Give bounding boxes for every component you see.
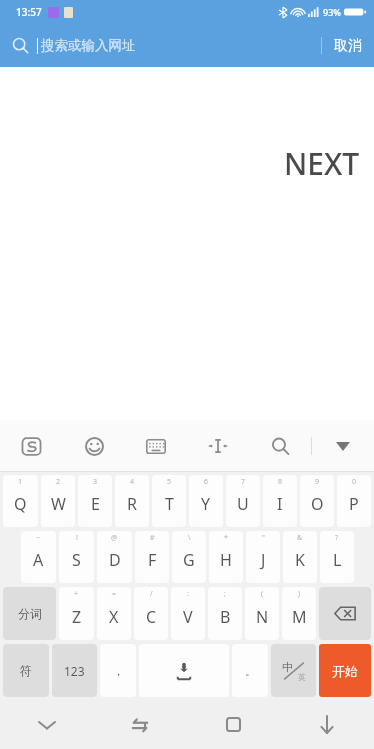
button[interactable]: @ bbox=[97, 531, 132, 583]
staticText: ~ bbox=[36, 533, 41, 543]
button[interactable]: ; bbox=[208, 587, 242, 640]
button[interactable]: Hide keyboard bbox=[0, 700, 93, 749]
staticText: ) bbox=[298, 589, 301, 599]
staticText: 3 bbox=[93, 477, 98, 487]
button[interactable]: 5 bbox=[152, 475, 186, 527]
staticText: B bbox=[220, 606, 231, 628]
button[interactable]: & bbox=[283, 531, 317, 583]
button[interactable]: ， bbox=[100, 644, 136, 697]
staticText: 开始 bbox=[332, 663, 358, 679]
staticText: 5 bbox=[167, 477, 172, 487]
button[interactable]: More bbox=[312, 420, 374, 472]
button[interactable]: / bbox=[134, 587, 168, 640]
button[interactable]: Down bbox=[280, 700, 374, 749]
staticText: ， bbox=[113, 664, 124, 678]
staticText: = bbox=[112, 589, 117, 599]
staticText: ; bbox=[224, 589, 226, 599]
staticText: 9 bbox=[315, 477, 320, 487]
button[interactable]: 1 bbox=[3, 475, 38, 527]
staticText: W bbox=[51, 493, 66, 515]
button[interactable]: ) bbox=[282, 587, 316, 640]
button[interactable]: 6 bbox=[189, 475, 223, 527]
staticText: 搜索或输入网址 bbox=[41, 37, 136, 54]
staticText: NEXT bbox=[284, 143, 360, 184]
staticText: 分词 bbox=[18, 606, 42, 621]
button[interactable]: Sogou input bbox=[0, 420, 63, 472]
staticText: 6 bbox=[204, 477, 209, 487]
button[interactable]: 开始 bbox=[319, 644, 371, 697]
button[interactable]: Switch Chinese English bbox=[271, 644, 316, 697]
staticText: Q bbox=[14, 493, 27, 515]
staticText: Z bbox=[72, 606, 82, 628]
button[interactable]: ~ bbox=[21, 531, 56, 583]
button[interactable]: # bbox=[135, 531, 169, 583]
staticText: @ bbox=[111, 533, 118, 543]
staticText: F bbox=[148, 549, 157, 571]
button[interactable]: ! bbox=[59, 531, 94, 583]
staticText: R bbox=[127, 493, 137, 515]
staticText: P bbox=[349, 493, 359, 515]
button[interactable]: 7 bbox=[226, 475, 260, 527]
staticText: 1 bbox=[18, 477, 23, 487]
button[interactable]: 2 bbox=[41, 475, 75, 527]
staticText: L bbox=[333, 549, 342, 571]
staticText: Y bbox=[201, 493, 211, 515]
staticText: X bbox=[109, 606, 119, 628]
button[interactable]: Emoji bbox=[63, 420, 125, 472]
staticText: V bbox=[183, 606, 193, 628]
staticText: 2 bbox=[56, 477, 61, 487]
staticText: + bbox=[74, 589, 79, 599]
staticText: J bbox=[261, 549, 266, 571]
button[interactable]: 8 bbox=[263, 475, 297, 527]
staticText: O bbox=[311, 493, 324, 515]
button[interactable]: 0 bbox=[337, 475, 371, 527]
staticText: & bbox=[297, 533, 303, 543]
staticText: 123 bbox=[64, 663, 85, 679]
staticText: S bbox=[72, 549, 81, 571]
staticText: I bbox=[277, 493, 283, 515]
staticText: 。 bbox=[245, 664, 256, 678]
staticText: 13:57 bbox=[16, 5, 42, 19]
staticText: N bbox=[256, 606, 269, 628]
staticText: H bbox=[220, 549, 232, 571]
staticText: G bbox=[183, 549, 195, 571]
staticText: 英 bbox=[298, 672, 306, 682]
staticText: 7 bbox=[241, 477, 246, 487]
button[interactable]: \ bbox=[172, 531, 206, 583]
button[interactable]: 9 bbox=[300, 475, 334, 527]
button[interactable]: * bbox=[209, 531, 243, 583]
button[interactable]: = bbox=[97, 587, 131, 640]
button[interactable]: 123 bbox=[52, 644, 97, 697]
staticText: 93% bbox=[323, 6, 341, 18]
button[interactable]: : bbox=[171, 587, 205, 640]
staticText: / bbox=[150, 589, 153, 599]
staticText: M bbox=[292, 606, 307, 628]
staticText: C bbox=[146, 606, 157, 628]
staticText: : bbox=[187, 589, 189, 599]
button[interactable]: 取消 bbox=[322, 24, 374, 67]
button[interactable]: 4 bbox=[115, 475, 149, 527]
staticText: T bbox=[165, 493, 174, 515]
staticText: K bbox=[295, 549, 305, 571]
button[interactable]: ( bbox=[245, 587, 279, 640]
button[interactable]: " bbox=[246, 531, 280, 583]
button[interactable]: 3 bbox=[78, 475, 112, 527]
button[interactable]: + bbox=[59, 587, 94, 640]
staticText: E bbox=[91, 493, 100, 515]
button[interactable]: Backspace bbox=[319, 587, 371, 640]
staticText: ! bbox=[76, 533, 78, 543]
staticText: ( bbox=[261, 589, 264, 599]
button[interactable]: Back bbox=[93, 700, 186, 749]
button[interactable]: ? bbox=[320, 531, 354, 583]
staticText: 取消 bbox=[334, 37, 362, 55]
button[interactable]: Move cursor bbox=[187, 420, 249, 472]
button[interactable]: Recents bbox=[186, 700, 280, 749]
button[interactable]: Search bbox=[249, 420, 311, 472]
button[interactable]: 。 bbox=[232, 644, 268, 697]
button[interactable]: Keyboard layout bbox=[125, 420, 187, 472]
button[interactable]: 符 bbox=[3, 644, 49, 697]
staticText: * bbox=[224, 533, 228, 543]
button[interactable]: 分词 bbox=[3, 587, 56, 640]
staticText: U bbox=[237, 493, 249, 515]
button[interactable]: Space bbox=[139, 644, 229, 697]
